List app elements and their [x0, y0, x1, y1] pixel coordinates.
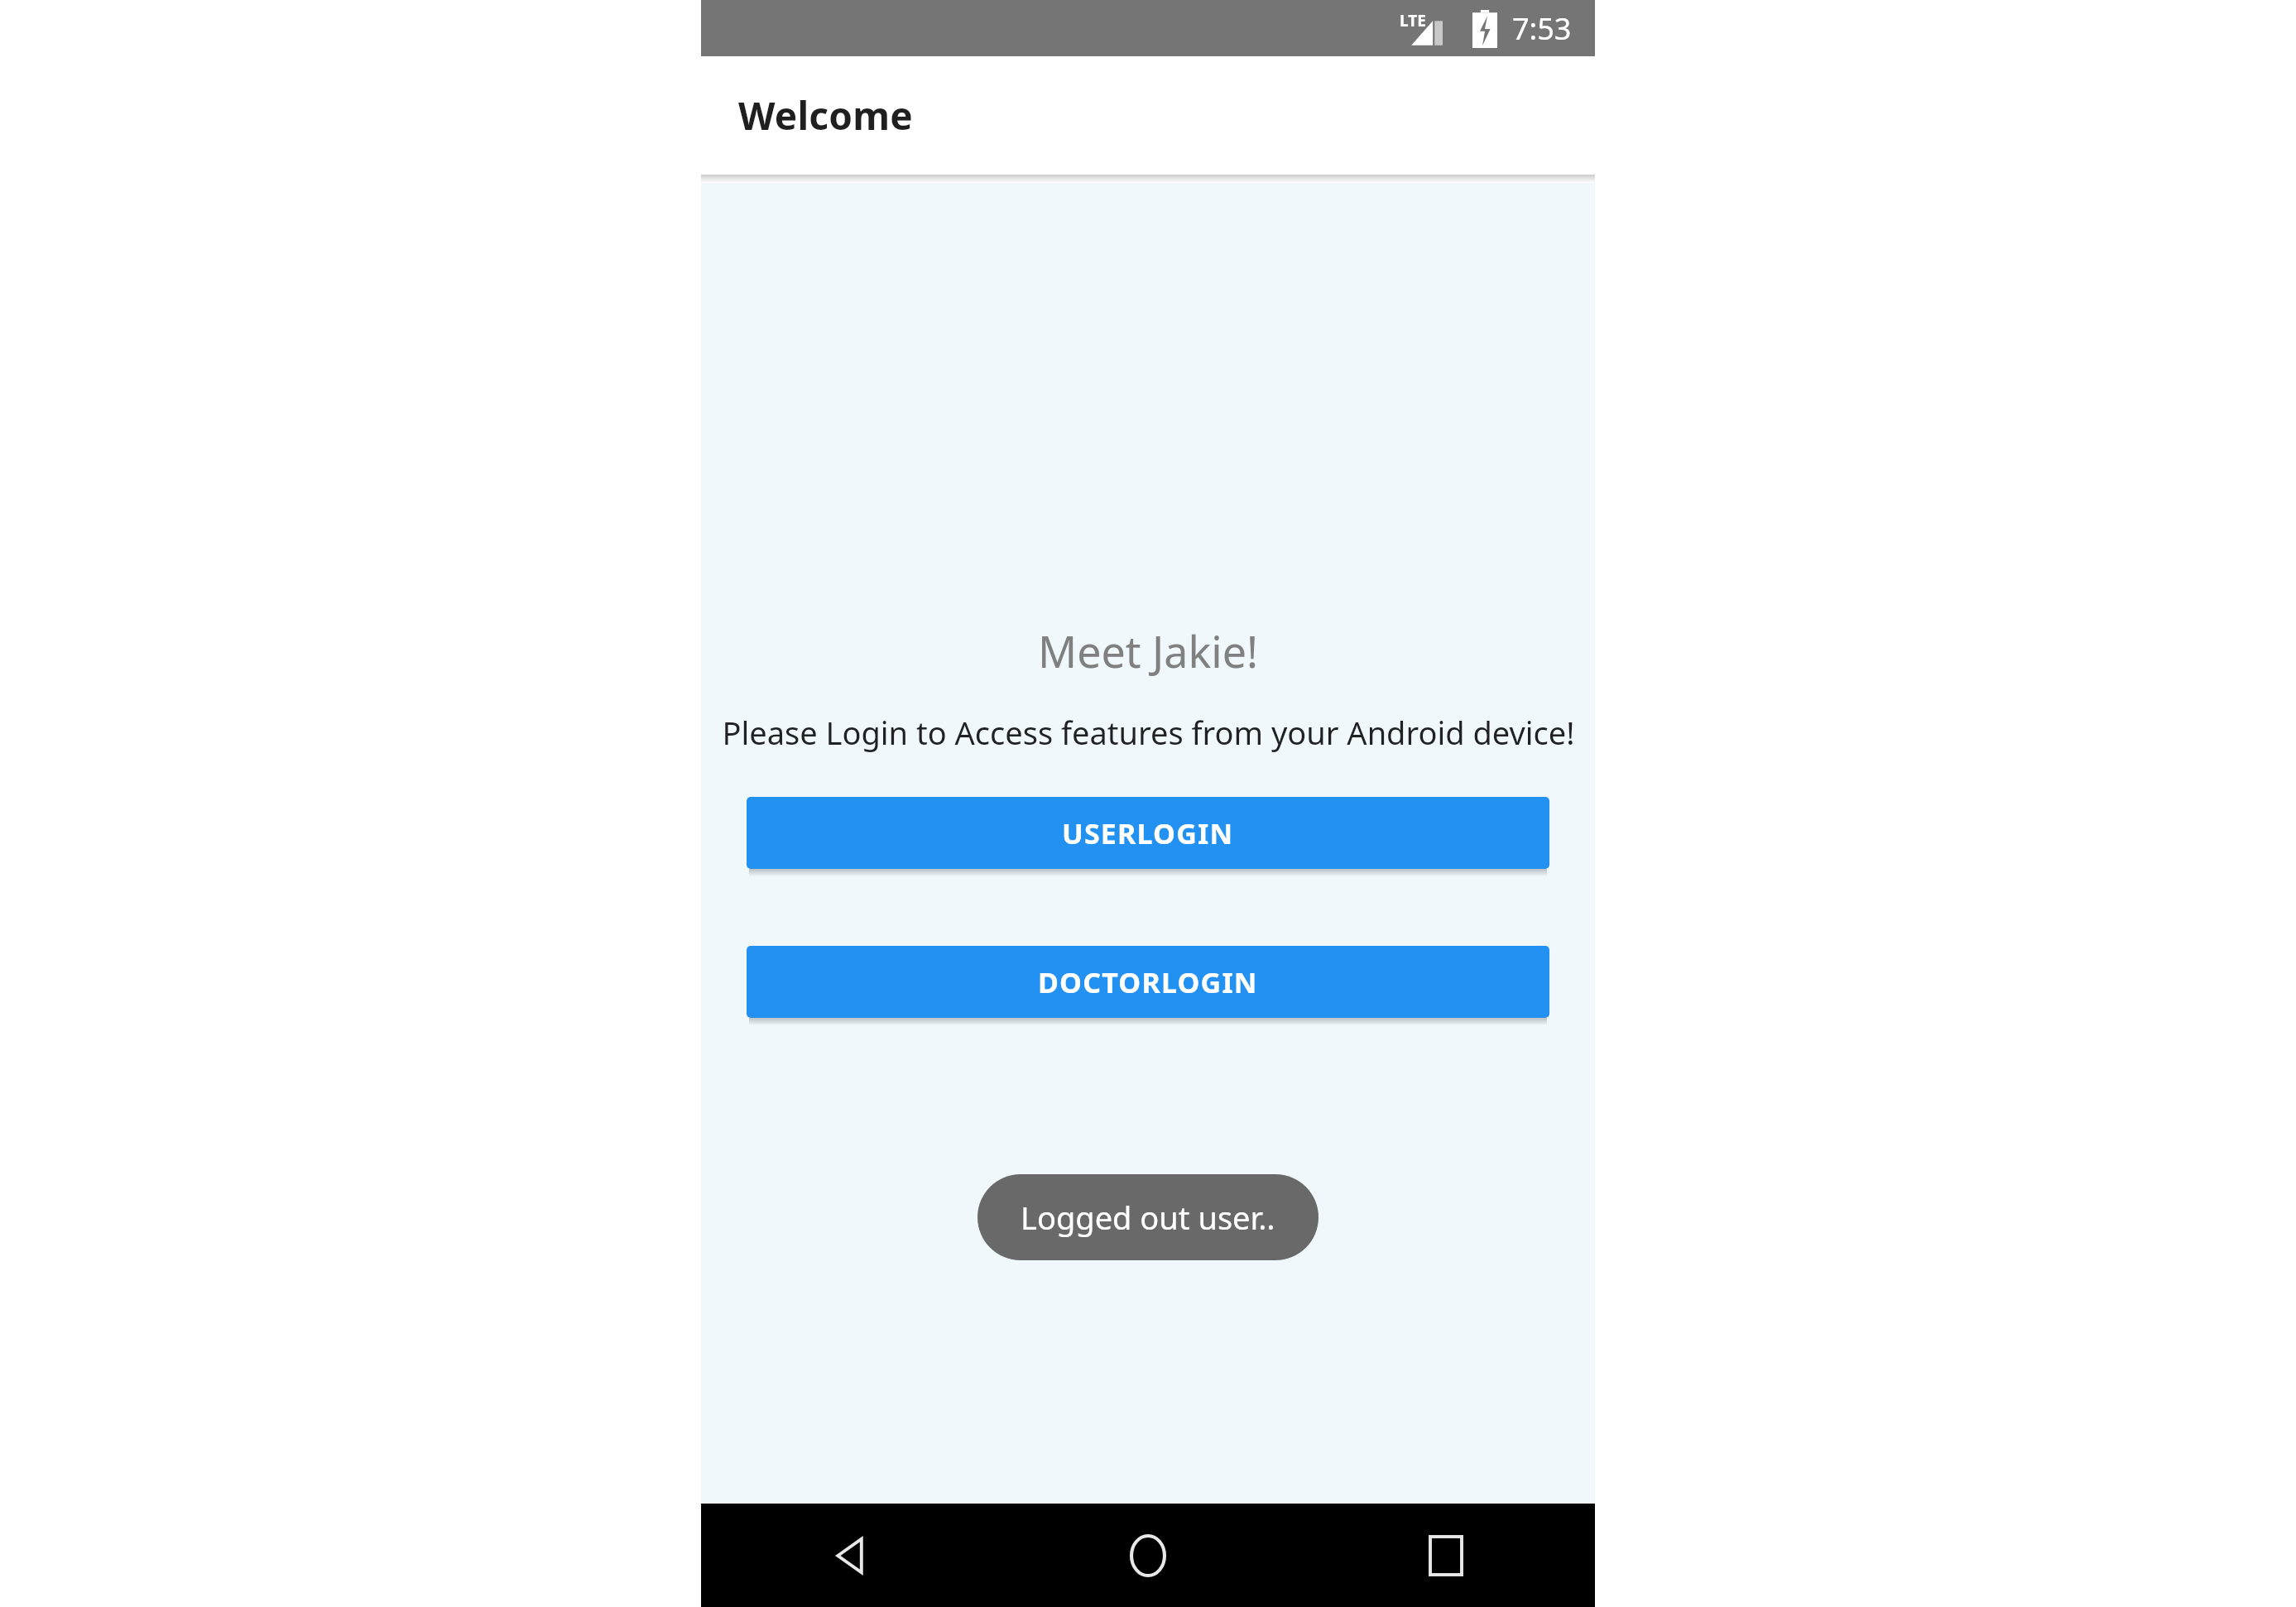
button[interactable]: Logged out user..	[977, 1174, 1319, 1260]
staticText: DOCTORLOGIN	[1038, 963, 1258, 1001]
staticText: Meet Jakie!	[1038, 621, 1258, 680]
button[interactable]: DOCTORLOGIN	[747, 946, 1549, 1018]
staticText: LTE	[1400, 10, 1426, 31]
staticText: 7:53	[1512, 8, 1572, 49]
staticText: USERLOGIN	[1062, 814, 1234, 852]
staticText: Welcome	[738, 89, 913, 142]
staticText: Please Login to Access features from you…	[722, 711, 1575, 754]
button[interactable]: Recent apps	[1297, 1504, 1595, 1607]
button[interactable]: Back	[701, 1504, 999, 1607]
staticText: Logged out user..	[1021, 1196, 1275, 1239]
button[interactable]: USERLOGIN	[747, 797, 1549, 869]
button[interactable]: Home	[999, 1504, 1297, 1607]
